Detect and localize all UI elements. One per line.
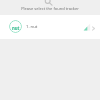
staticText: 1. nut	[26, 24, 38, 30]
staticText: nut	[12, 25, 20, 31]
other: Open tracker details	[91, 26, 96, 31]
other: Scanning for trackers	[43, 0, 55, 9]
staticText: Please select the found tracker	[0, 6, 100, 11]
other: Signal strength	[83, 23, 91, 31]
button[interactable]: nut	[0, 15, 100, 39]
